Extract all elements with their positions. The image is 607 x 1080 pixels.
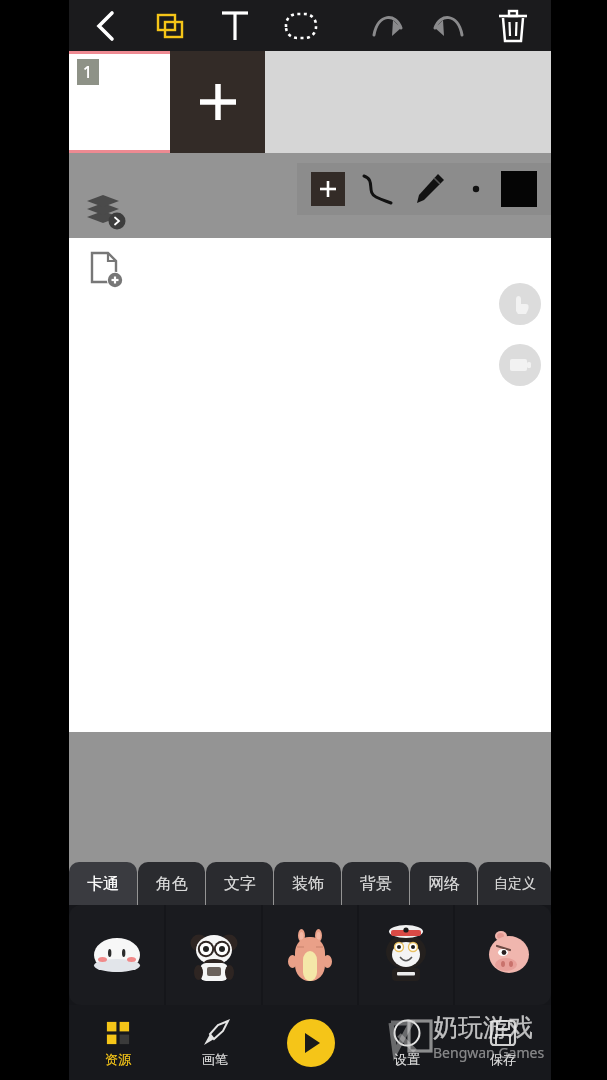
button[interactable]: Page 1 (69, 51, 170, 153)
button[interactable]: 网络 (410, 862, 477, 905)
button[interactable]: 资源 (69, 1005, 166, 1080)
staticText: 设置 (394, 1051, 420, 1067)
button[interactable]: Touch mode (499, 283, 541, 325)
button[interactable]: Sticker 5 (455, 905, 551, 1005)
button[interactable]: 设置 (359, 1005, 455, 1080)
button[interactable]: Play (287, 1019, 335, 1067)
button[interactable]: Layers (82, 192, 128, 238)
staticText: 装饰 (292, 874, 324, 894)
staticText: 资源 (105, 1051, 131, 1067)
button[interactable]: Undo (365, 4, 409, 48)
button[interactable]: 文字 (206, 862, 273, 905)
button[interactable]: 装饰 (274, 862, 341, 905)
button[interactable]: Sticker 3 (263, 905, 357, 1005)
staticText: Bengwan Games (433, 1043, 545, 1062)
button[interactable]: 角色 (138, 862, 205, 905)
staticText: 保存 (490, 1051, 516, 1067)
button[interactable]: 保存 (455, 1005, 551, 1080)
button[interactable]: Pencil (409, 169, 449, 209)
button[interactable]: Add layer (84, 248, 124, 288)
staticText: 网络 (428, 874, 460, 894)
button[interactable]: 背景 (342, 862, 409, 905)
button[interactable]: Select (279, 4, 323, 48)
staticText: 文字 (224, 874, 256, 894)
button[interactable]: Curve (359, 169, 399, 209)
button[interactable]: Delete (491, 4, 535, 48)
button[interactable]: Add page (170, 51, 265, 153)
button[interactable]: 卡通 (69, 862, 137, 905)
button[interactable]: Back (83, 4, 127, 48)
button[interactable]: Sticker 1 (69, 905, 164, 1005)
button[interactable]: Sticker 2 (166, 905, 261, 1005)
staticText: 背景 (360, 874, 392, 894)
button[interactable]: Text (213, 4, 257, 48)
button[interactable]: 自定义 (478, 862, 551, 905)
staticText: 奶玩游戏 (433, 1012, 533, 1043)
button[interactable]: Screen size (499, 344, 541, 386)
button[interactable]: Add brush (311, 172, 345, 206)
staticText: 角色 (156, 874, 188, 894)
staticText: 画笔 (202, 1051, 228, 1067)
button[interactable]: Size (461, 174, 491, 204)
button[interactable]: 画笔 (166, 1005, 263, 1080)
staticText: 卡通 (87, 874, 119, 894)
staticText: 1 (83, 61, 93, 83)
button[interactable]: Redo (427, 4, 471, 48)
button[interactable]: Sticker 4 (359, 905, 453, 1005)
staticText: 自定义 (494, 875, 536, 893)
button[interactable]: Layers tool (147, 4, 191, 48)
